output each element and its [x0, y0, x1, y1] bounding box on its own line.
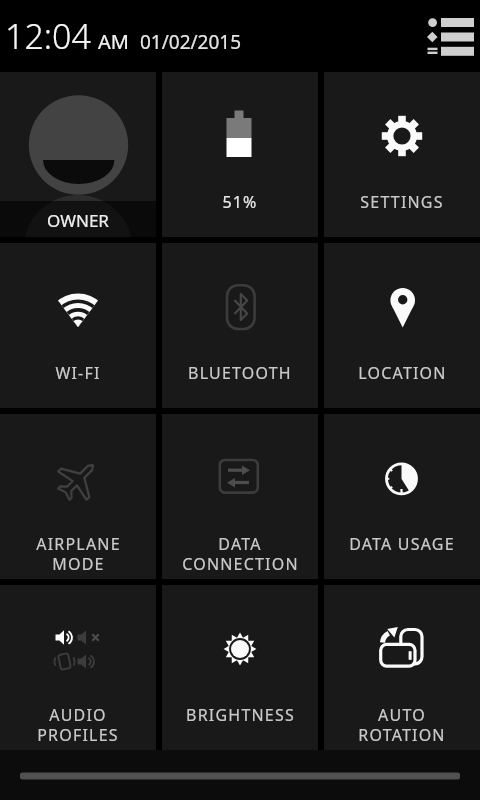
staticText: DATA	[218, 533, 262, 555]
staticText: AM	[98, 28, 129, 55]
button[interactable]: DATA	[162, 414, 318, 579]
staticText: AUDIO	[49, 704, 107, 726]
staticText: LOCATION	[358, 362, 447, 384]
staticText: DATA USAGE	[349, 533, 455, 555]
button[interactable]: AUTO	[324, 585, 480, 750]
staticText: BRIGHTNESS	[186, 704, 295, 726]
staticText: 12:04	[5, 13, 91, 59]
staticText: AUTO	[378, 704, 426, 726]
button[interactable]: DATA USAGE	[324, 414, 480, 579]
staticText: CONNECTION	[182, 553, 299, 575]
staticText: 51%	[222, 191, 258, 213]
staticText: ROTATION	[358, 724, 446, 746]
staticText: AIRPLANE	[36, 533, 121, 555]
staticText: 01/02/2015	[140, 29, 242, 55]
button[interactable]: AUDIO	[0, 585, 156, 750]
staticText: BLUETOOTH	[188, 362, 292, 384]
staticText: PROFILES	[37, 724, 119, 746]
button[interactable]: SETTINGS	[324, 72, 480, 237]
staticText: WI-FI	[55, 362, 101, 384]
button[interactable]	[0, 0, 480, 72]
staticText: SETTINGS	[360, 191, 444, 213]
button[interactable]: BLUETOOTH	[162, 243, 318, 408]
button[interactable]: OWNER	[0, 72, 156, 237]
button[interactable]: 51%	[162, 72, 318, 237]
staticText: OWNER	[47, 209, 109, 232]
button[interactable]: LOCATION	[324, 243, 480, 408]
button[interactable]: WI-FI	[0, 243, 156, 408]
staticText: MODE	[52, 553, 105, 575]
button[interactable]: AIRPLANE	[0, 414, 156, 579]
button[interactable]: BRIGHTNESS	[162, 585, 318, 750]
